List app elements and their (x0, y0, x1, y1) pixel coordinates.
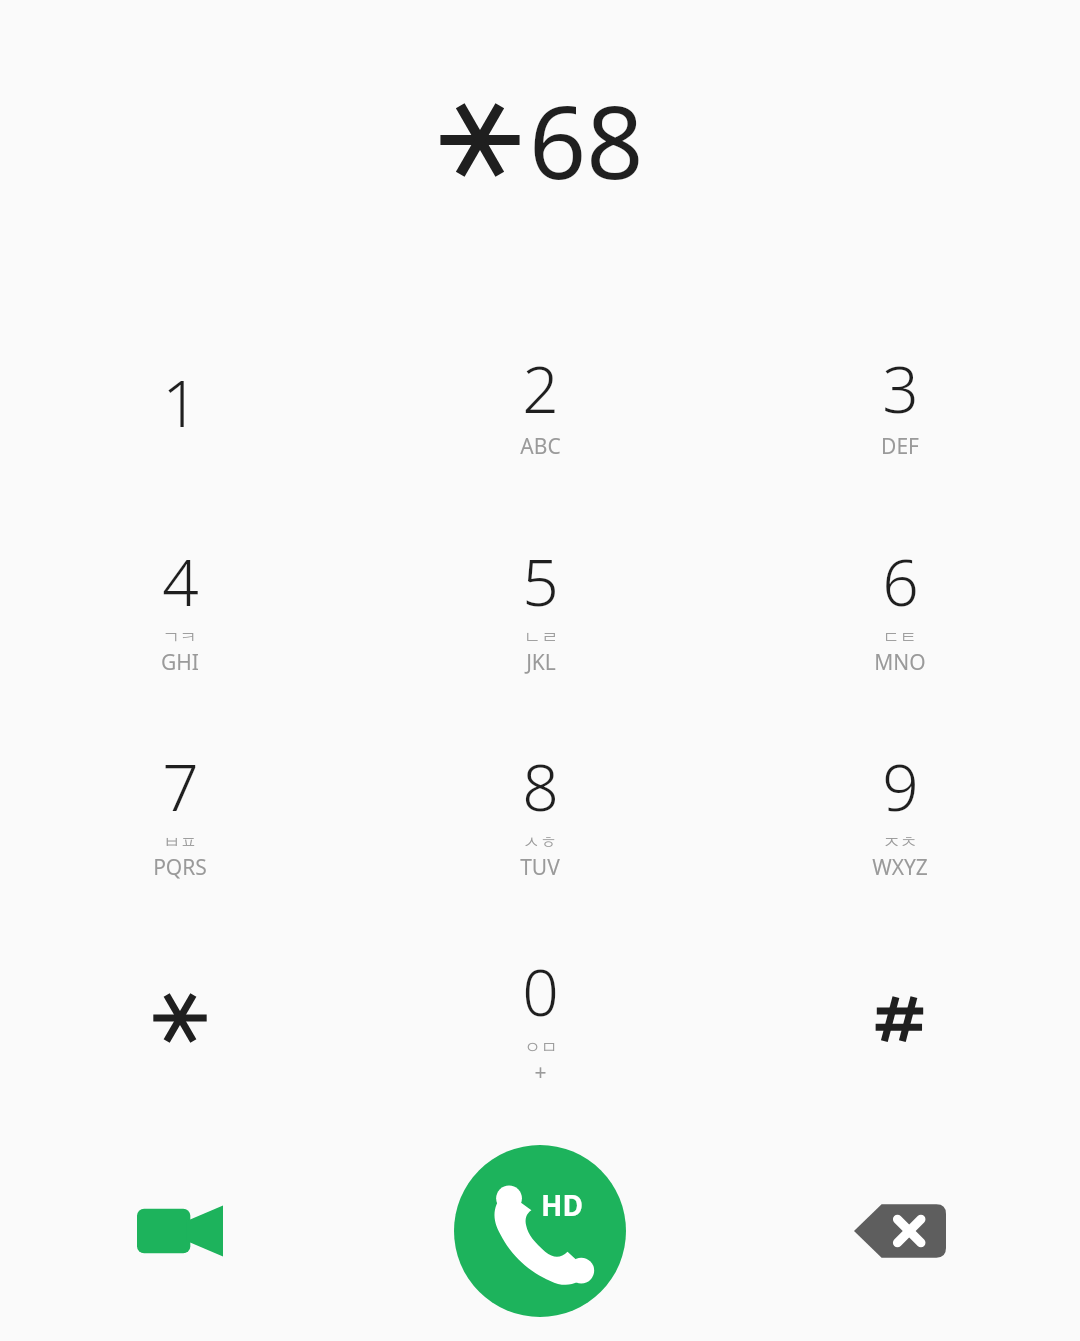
staticText: 7 (162, 743, 199, 830)
staticText: ㄱㅋ (163, 627, 197, 648)
staticText: 4 (162, 538, 199, 625)
staticText: 9 (882, 743, 919, 830)
staticText: JKL (526, 648, 556, 677)
staticText: ㅈㅊ (883, 832, 917, 853)
button[interactable]: 6 (720, 505, 1080, 710)
staticText: ㅇㅁ (524, 1037, 558, 1058)
staticText: TUV (520, 853, 560, 882)
staticText: ㅂㅍ (163, 832, 197, 853)
staticText: ㄷㅌ (883, 627, 917, 648)
button[interactable]: 1 (0, 300, 360, 505)
staticText: 68 (529, 72, 644, 208)
button[interactable]: 7 (0, 710, 360, 915)
staticText: ㄴㄹ (524, 627, 558, 648)
button[interactable]: Backspace (720, 1120, 1080, 1341)
staticText: DEF (881, 432, 919, 461)
staticText: MNO (874, 648, 926, 677)
staticText: PQRS (153, 853, 207, 882)
staticText: + (534, 1058, 547, 1087)
button[interactable]: 2 (360, 300, 720, 505)
staticText: GHI (161, 648, 199, 677)
button[interactable]: Video call (0, 1120, 360, 1341)
button[interactable]: 3 (720, 300, 1080, 505)
button[interactable]: 4 (0, 505, 360, 710)
staticText: 5 (522, 538, 559, 625)
staticText: 3 (882, 345, 919, 432)
staticText: 2 (522, 345, 559, 432)
button[interactable] (720, 915, 1080, 1120)
button[interactable]: 9 (720, 710, 1080, 915)
staticText: 0 (522, 948, 559, 1035)
button[interactable]: Call (454, 1145, 626, 1317)
staticText: HD (541, 1186, 583, 1224)
staticText: WXYZ (872, 853, 928, 882)
button[interactable] (0, 915, 360, 1120)
staticText: ABC (520, 432, 561, 461)
staticText: 8 (522, 743, 559, 830)
staticText: ㅅㅎ (523, 832, 557, 853)
button[interactable]: 5 (360, 505, 720, 710)
button[interactable]: 0 (360, 915, 720, 1120)
button[interactable]: 8 (360, 710, 720, 915)
staticText: 1 (162, 359, 199, 446)
staticText: 6 (882, 538, 919, 625)
